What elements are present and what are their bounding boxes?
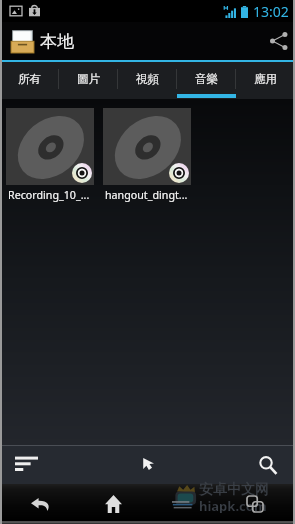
staticText: 所有 [18,72,41,86]
button[interactable]: 應用 [236,62,295,99]
staticText: 視頻 [136,72,159,86]
staticText: hiapk.com [199,497,267,513]
staticText: 圖片 [77,72,100,86]
button[interactable]: 所有 [0,62,59,99]
staticText: 安卓中文网 [199,481,269,499]
staticText: hangout_dingt... [105,188,188,203]
staticText: 應用 [254,72,277,86]
button[interactable]: Share [258,22,295,60]
button[interactable]: Sort [5,446,47,484]
staticText: Recording_10_... [8,188,90,203]
button[interactable]: 視頻 [118,62,177,99]
staticText: 13:02 [253,2,289,21]
button[interactable]: hangout_dingt... [103,108,191,203]
staticText: 音樂 [195,72,218,86]
staticText: 本地 [40,31,74,52]
button[interactable]: 圖片 [59,62,118,99]
button[interactable]: Select [127,446,169,484]
button[interactable]: Search [247,446,289,484]
button[interactable]: 音樂 [177,62,236,99]
button[interactable]: Home [92,484,134,524]
button[interactable]: Recording_10_... [6,108,94,203]
button[interactable]: Recents [234,484,276,524]
button[interactable]: Back [19,484,61,524]
